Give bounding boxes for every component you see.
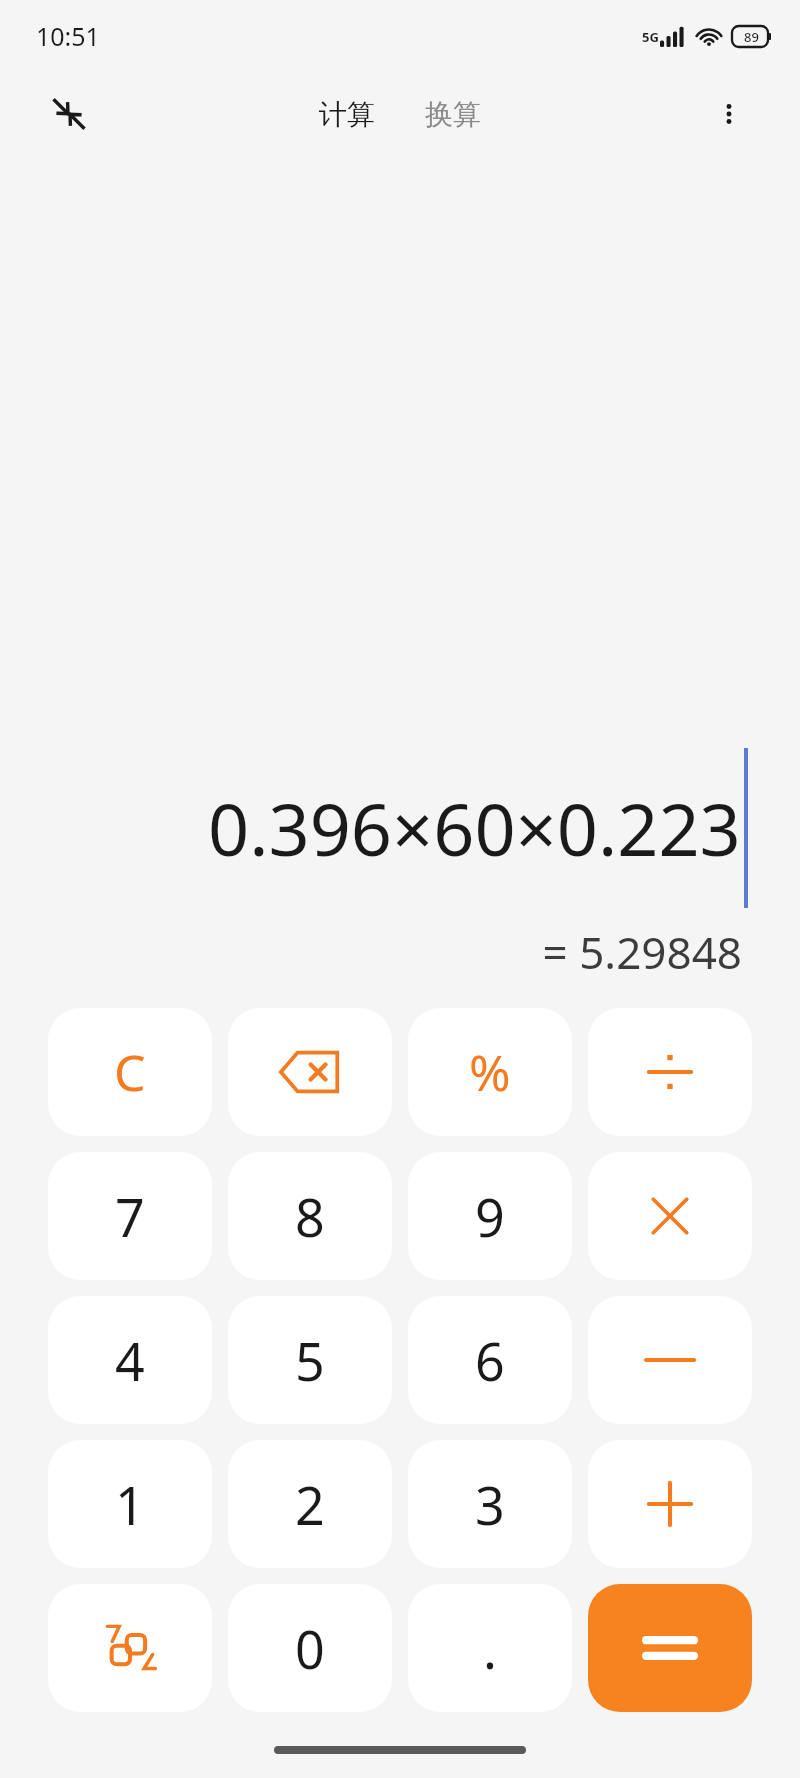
button[interactable]: 2 [228, 1440, 392, 1568]
staticText: 0.396×60×0.223 [208, 779, 741, 877]
button[interactable]: 计算 [307, 89, 387, 140]
button[interactable]: Minus [588, 1296, 752, 1424]
button[interactable]: Clear [48, 1008, 212, 1136]
button[interactable]: 4 [48, 1296, 212, 1424]
button[interactable]: 3 [408, 1440, 572, 1568]
button[interactable]: 0 [228, 1584, 392, 1712]
staticText: 4 [115, 1325, 145, 1396]
staticText: 3 [475, 1469, 505, 1540]
button[interactable]: Collapse [46, 91, 92, 137]
staticText: C [114, 1038, 146, 1106]
staticText: 1 [115, 1469, 145, 1540]
staticText: 8 [295, 1181, 325, 1252]
staticText: 换算 [425, 97, 481, 132]
button[interactable]: . [408, 1584, 572, 1712]
button[interactable]: More options [706, 91, 752, 137]
button[interactable]: Multiply [588, 1152, 752, 1280]
button[interactable]: Divide [588, 1008, 752, 1136]
staticText: % [469, 1038, 511, 1106]
button[interactable]: 8 [228, 1152, 392, 1280]
staticText: 5 [295, 1325, 325, 1396]
button[interactable]: 6 [408, 1296, 572, 1424]
staticText: 89 [744, 28, 759, 46]
staticText: = 5.29848 [0, 922, 742, 982]
button[interactable]: 1 [48, 1440, 212, 1568]
button[interactable]: Plus [588, 1440, 752, 1568]
button[interactable]: Scientific [48, 1584, 212, 1712]
button[interactable]: 9 [408, 1152, 572, 1280]
button[interactable]: 5 [228, 1296, 392, 1424]
button[interactable]: 换算 [413, 89, 493, 140]
button[interactable]: Equals [588, 1584, 752, 1712]
staticText: 10:51 [36, 19, 100, 53]
staticText: . [483, 1613, 497, 1684]
staticText: 计算 [319, 97, 375, 132]
staticText: 5G [642, 28, 659, 46]
staticText: 2 [295, 1469, 325, 1540]
button[interactable]: Percent [408, 1008, 572, 1136]
staticText: 9 [475, 1181, 505, 1252]
button[interactable]: 7 [48, 1152, 212, 1280]
staticText: 7 [115, 1181, 145, 1252]
button[interactable]: Backspace [228, 1008, 392, 1136]
staticText: 0 [295, 1613, 325, 1684]
staticText: 6 [475, 1325, 505, 1396]
